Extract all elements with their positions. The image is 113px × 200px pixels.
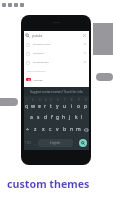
staticText: ?123 [25, 141, 32, 145]
button[interactable]: b [61, 124, 68, 135]
staticText: 6 [57, 98, 59, 102]
staticText: v [56, 126, 59, 133]
button[interactable]: 2 [30, 96, 36, 111]
staticText: w [31, 103, 35, 110]
button[interactable]: youtube tv [24, 49, 89, 58]
staticText: k [75, 114, 78, 121]
button[interactable]: Search [24, 31, 89, 40]
staticText: youtube to mp3 [33, 43, 51, 46]
staticText: q [25, 103, 29, 110]
staticText: 2 [32, 98, 34, 102]
staticText: u [63, 103, 67, 110]
staticText: 5 [50, 98, 52, 102]
button[interactable]: n [68, 124, 75, 135]
staticText: a [30, 114, 33, 121]
staticText: Suggest contact names? Touch for info. [30, 90, 84, 94]
button[interactable]: 3 [36, 96, 42, 111]
button[interactable]: 8 [68, 96, 75, 111]
button[interactable]: 5 [48, 96, 54, 111]
staticText: , [34, 140, 36, 145]
staticText: b [63, 126, 67, 133]
button[interactable]: youtube to mp3 [24, 40, 89, 49]
staticText: f [51, 114, 53, 121]
staticText: r [44, 103, 47, 110]
button[interactable]: c [47, 124, 54, 135]
staticText: m [76, 126, 81, 133]
staticText: y [56, 103, 59, 110]
button[interactable]: a [28, 111, 35, 124]
staticText: . [75, 140, 77, 145]
button[interactable]: s [35, 111, 42, 124]
button[interactable]: d [42, 111, 49, 124]
button[interactable]: 6 [54, 96, 61, 111]
staticText: 4 [45, 98, 47, 102]
button[interactable]: j [67, 111, 73, 124]
staticText: h [62, 114, 66, 121]
staticText: t [50, 103, 52, 110]
staticText: 1 [26, 98, 28, 102]
button[interactable]: l [79, 111, 85, 124]
staticText: 8 [71, 98, 73, 102]
staticText: e [38, 103, 41, 110]
button[interactable]: youtube music [24, 58, 89, 67]
staticText: x [42, 126, 45, 133]
button[interactable]: Search [79, 139, 87, 147]
staticText: English [50, 141, 61, 145]
staticText: FROM YOUR APPS [27, 70, 46, 73]
other: Clear [83, 34, 86, 37]
staticText: c [49, 126, 52, 133]
staticText: youtube tv [33, 52, 45, 55]
staticText: d [44, 114, 48, 121]
button[interactable]: 7 [61, 96, 68, 111]
button[interactable]: v [54, 124, 61, 135]
button[interactable]: g [55, 111, 61, 124]
button[interactable]: 4 [42, 96, 48, 111]
staticText: youtube music [33, 61, 49, 64]
button[interactable]: k [73, 111, 79, 124]
staticText: youtube [32, 34, 43, 38]
other: Search [25, 33, 30, 38]
button[interactable]: ?123 [25, 135, 32, 150]
button[interactable]: f [49, 111, 55, 124]
staticText: o [77, 103, 81, 110]
staticText: l [81, 114, 83, 121]
staticText: 9 [78, 98, 80, 102]
button[interactable]: YouTube [24, 75, 89, 84]
button[interactable]: m [75, 124, 82, 135]
staticText: 7 [64, 98, 66, 102]
button[interactable]: 0 [82, 96, 89, 111]
staticText: z [34, 126, 37, 133]
staticText: n [70, 126, 74, 133]
staticText: 3 [39, 98, 41, 102]
staticText: j [69, 114, 71, 121]
staticText: i [71, 103, 73, 110]
button[interactable]: Backspace [82, 124, 89, 135]
staticText: p [84, 103, 88, 110]
button[interactable]: x [39, 124, 47, 135]
button[interactable]: 9 [75, 96, 82, 111]
button[interactable]: English [38, 139, 73, 147]
button[interactable]: Shift [24, 124, 31, 135]
staticText: YouTube [33, 78, 43, 81]
button[interactable]: z [31, 124, 39, 135]
button[interactable]: 1 [24, 96, 30, 111]
button[interactable]: h [61, 111, 67, 124]
staticText: 0 [85, 98, 87, 102]
staticText: custom themes [7, 177, 90, 192]
staticText: s [37, 114, 40, 121]
staticText: g [56, 114, 60, 121]
